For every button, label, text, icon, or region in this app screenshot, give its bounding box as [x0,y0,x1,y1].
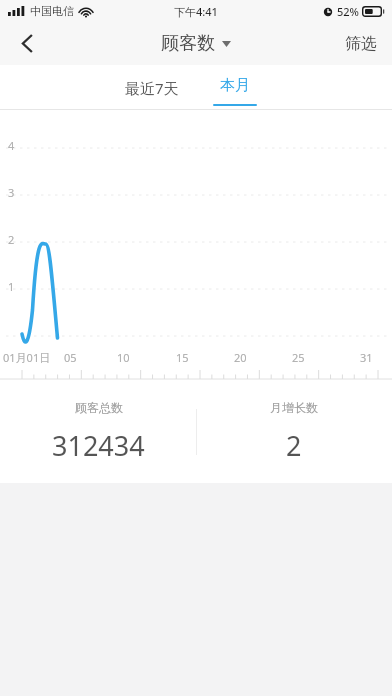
staticText: 01月01日 [3,350,51,365]
button[interactable]: 顾客数 [155,26,237,61]
staticText: 下午4:41 [174,4,218,19]
staticText: 4 [8,138,15,153]
button[interactable]: 月增长数 [196,380,392,483]
staticText: 15 [176,350,189,365]
staticText: 顾客数 [161,32,215,55]
staticText: 筛选 [345,34,377,54]
staticText: 312434 [52,427,145,464]
staticText: 顾客总数 [75,400,123,415]
staticText: 本月 [220,76,250,95]
staticText: 月增长数 [270,400,318,415]
staticText: 中国电信 [30,4,74,18]
staticText: 31 [360,350,373,365]
staticText: 52% [337,4,359,19]
button[interactable]: 本月 [206,65,264,110]
button[interactable]: 顾客总数 [0,380,196,483]
button[interactable]: 筛选 [330,22,392,65]
staticText: 20 [234,350,247,365]
staticText: 05 [64,350,77,365]
button[interactable]: 最近7天 [112,65,192,110]
button[interactable]: Back [0,22,54,65]
staticText: 2 [286,427,302,464]
staticText: 3 [8,185,15,200]
staticText: 最近7天 [125,78,179,98]
staticText: 25 [292,350,305,365]
staticText: 10 [117,350,130,365]
staticText: 2 [8,232,15,247]
staticText: 1 [8,279,15,294]
